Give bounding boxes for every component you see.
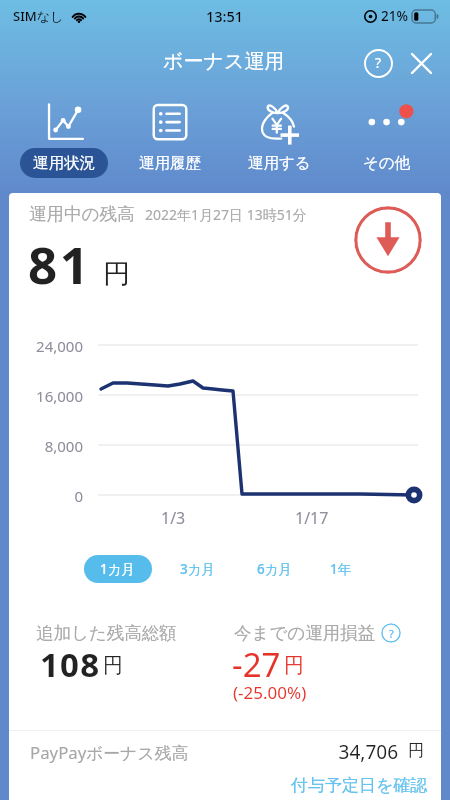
staticText: SIMなし <box>13 7 64 25</box>
staticText: 6カ月 <box>257 560 293 578</box>
button[interactable]: 1年 <box>314 555 368 583</box>
staticText: 1カ月 <box>100 560 136 578</box>
button[interactable]: 3カ月 <box>164 555 232 583</box>
staticText: 1年 <box>330 560 352 578</box>
button[interactable]: PayPayボーナス残高 <box>9 731 441 800</box>
staticText: 16,000 <box>9 386 83 406</box>
staticText: ? <box>375 53 382 72</box>
staticText: 1/3 <box>161 507 186 529</box>
button[interactable]: 運用履歴 <box>117 96 223 188</box>
staticText: 2022年1月27日 13時51分 <box>145 205 307 224</box>
staticText: (-25.00%) <box>233 681 307 704</box>
button[interactable]: Withdraw <box>354 206 422 274</box>
staticText: ? <box>389 626 394 641</box>
staticText: 1/17 <box>295 507 329 529</box>
staticText: 円 <box>103 257 130 291</box>
staticText: 円 <box>408 741 424 761</box>
button[interactable]: Close <box>403 44 439 80</box>
staticText: ボーナス運用 <box>163 49 285 74</box>
staticText: 13:51 <box>206 6 244 26</box>
staticText: 付与予定日を確認 <box>291 775 428 796</box>
staticText: 円 <box>103 653 123 678</box>
staticText: 24,000 <box>9 336 83 356</box>
staticText: 108 <box>40 642 101 687</box>
button[interactable]: Profit help <box>381 623 401 643</box>
staticText: その他 <box>363 153 411 173</box>
staticText: 運用履歴 <box>139 153 201 173</box>
staticText: 81 <box>28 229 92 298</box>
staticText: PayPayボーナス残高 <box>30 741 189 764</box>
button[interactable]: 1カ月 <box>84 555 152 583</box>
staticText: 3カ月 <box>180 560 216 578</box>
button[interactable]: 運用状況 <box>11 96 117 188</box>
staticText: 21% <box>381 7 408 25</box>
button[interactable]: その他 <box>334 96 440 188</box>
staticText: -27 <box>232 642 281 687</box>
staticText: 円 <box>284 653 304 678</box>
button[interactable]: 6カ月 <box>241 555 309 583</box>
staticText: 運用状況 <box>33 153 95 173</box>
staticText: 34,706 <box>9 739 398 765</box>
staticText: 0 <box>9 486 83 506</box>
staticText: 運用する <box>248 153 311 173</box>
staticText: 追加した残高総額 <box>36 622 177 644</box>
staticText: 今までの運用損益 <box>234 622 376 644</box>
button[interactable]: Help <box>360 44 396 80</box>
staticText: 運用中の残高 <box>29 203 135 225</box>
button[interactable]: 運用する <box>226 96 332 188</box>
staticText: 8,000 <box>9 436 83 456</box>
